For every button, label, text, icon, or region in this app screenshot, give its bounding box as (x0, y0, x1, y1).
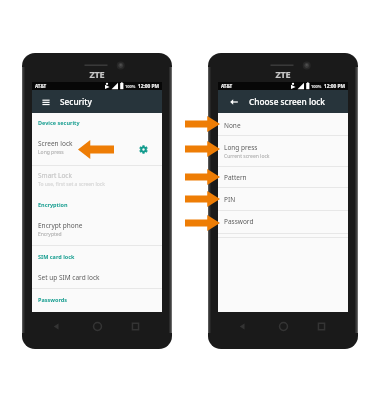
staticText: 12:00 PM (138, 83, 160, 90)
button[interactable] (32, 267, 162, 287)
other: Pointer (185, 215, 220, 231)
button[interactable] (218, 136, 348, 167)
staticText: Password (224, 217, 254, 226)
staticText: Set up SIM card lock (38, 273, 100, 282)
button[interactable] (218, 210, 348, 233)
staticText: Encrypted (38, 231, 62, 238)
staticText: Encryption (38, 201, 68, 208)
button[interactable]: Navigate up (218, 90, 249, 113)
button[interactable]: Open navigation menu (32, 90, 60, 113)
staticText: ZTE (208, 68, 358, 81)
staticText: Long press (38, 149, 64, 156)
button[interactable] (32, 215, 162, 241)
button[interactable] (218, 116, 348, 136)
button[interactable]: Screen lock settings (136, 142, 151, 157)
other: Pointer (185, 141, 220, 157)
button[interactable]: Recent apps (311, 316, 331, 336)
staticText: PIN (224, 195, 236, 204)
staticText: SIM card lock (38, 253, 75, 260)
button[interactable]: Home (273, 316, 293, 336)
other: Pointer (185, 191, 220, 207)
staticText: ZTE (22, 68, 172, 81)
staticText: 100% (311, 84, 322, 89)
staticText: Device security (38, 119, 80, 126)
button[interactable]: Recent apps (125, 316, 145, 336)
button[interactable] (32, 134, 162, 162)
staticText: Security (60, 96, 92, 107)
staticText: Current screen lock (224, 153, 270, 160)
button[interactable] (218, 187, 348, 210)
staticText: Encrypt phone (38, 221, 83, 230)
other: Pointer (185, 116, 220, 132)
staticText: Passwords (38, 296, 67, 303)
staticText: Smart Lock (38, 171, 72, 180)
button[interactable]: Back (46, 316, 66, 336)
staticText: 100% (125, 84, 136, 89)
button[interactable] (32, 166, 162, 194)
staticText: 12:00 PM (324, 83, 346, 90)
staticText: Long press (224, 143, 258, 152)
staticText: None (224, 121, 241, 130)
staticText: To use, first set a screen lock (38, 181, 105, 188)
staticText: Pattern (224, 173, 247, 182)
staticText: AT&T (221, 83, 233, 89)
button[interactable] (218, 167, 348, 187)
other: Pointer (185, 169, 220, 185)
staticText: Screen lock (38, 139, 73, 148)
button[interactable]: Back (232, 316, 252, 336)
staticText: Choose screen lock (249, 96, 325, 107)
staticText: AT&T (35, 83, 47, 89)
other: Pointer (78, 140, 114, 159)
button[interactable]: Home (87, 316, 107, 336)
